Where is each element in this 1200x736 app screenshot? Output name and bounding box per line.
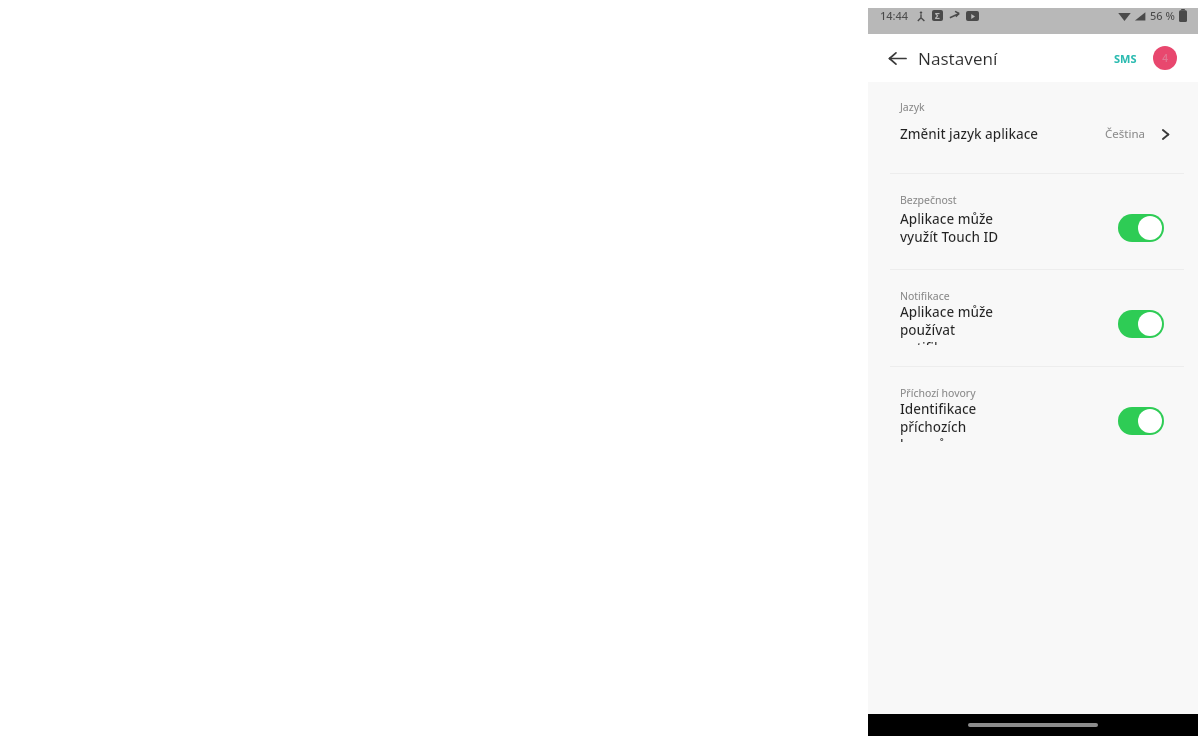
button[interactable]: Aplikace může využít Touch ID: [868, 207, 1198, 249]
staticText: Nastavení: [918, 47, 998, 70]
staticText: Příchozí hovory: [900, 386, 976, 400]
button[interactable]: Toggle on: [1118, 214, 1164, 242]
staticText: Aplikace může používat notifikace: [900, 303, 1009, 345]
staticText: Bezpečnost: [900, 193, 957, 207]
button[interactable]: Identifikace příchozích hovorů: [868, 400, 1198, 442]
button[interactable]: Notifications: 4: [1153, 46, 1177, 70]
button[interactable]: Změnit jazyk aplikace: [868, 114, 1198, 154]
staticText: Jazyk: [900, 100, 925, 114]
staticText: 14:44: [880, 8, 909, 23]
staticText: Změnit jazyk aplikace: [900, 125, 1039, 143]
button[interactable]: Aplikace může používat notifikace: [868, 303, 1198, 345]
button[interactable]: Back: [882, 43, 912, 73]
button[interactable]: Toggle on: [1118, 310, 1164, 338]
staticText: Aplikace může využít Touch ID: [900, 210, 1009, 246]
staticText: SMS: [1114, 51, 1137, 66]
staticText: Σ: [935, 10, 940, 21]
staticText: 56 %: [1150, 8, 1175, 23]
button[interactable]: Toggle on: [1118, 407, 1164, 435]
staticText: 4: [1162, 51, 1168, 65]
staticText: Notifikace: [900, 289, 950, 303]
staticText: Čeština: [1105, 126, 1145, 142]
button[interactable]: SMS: [1108, 45, 1143, 72]
staticText: Identifikace příchozích hovorů: [900, 400, 1009, 442]
